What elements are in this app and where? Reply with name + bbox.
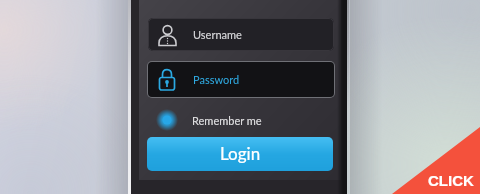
button[interactable]: CLICK: [392, 127, 480, 194]
staticText: Remember me: [192, 114, 262, 127]
button[interactable]: Remember me: [152, 106, 302, 134]
staticText: Username: [193, 28, 242, 41]
staticText: Password: [193, 73, 240, 86]
button[interactable]: Username: [148, 18, 334, 51]
button[interactable]: Password: [147, 61, 335, 98]
staticText: CLICK: [428, 172, 474, 189]
button[interactable]: Login: [147, 137, 333, 171]
staticText: Login: [220, 143, 261, 163]
